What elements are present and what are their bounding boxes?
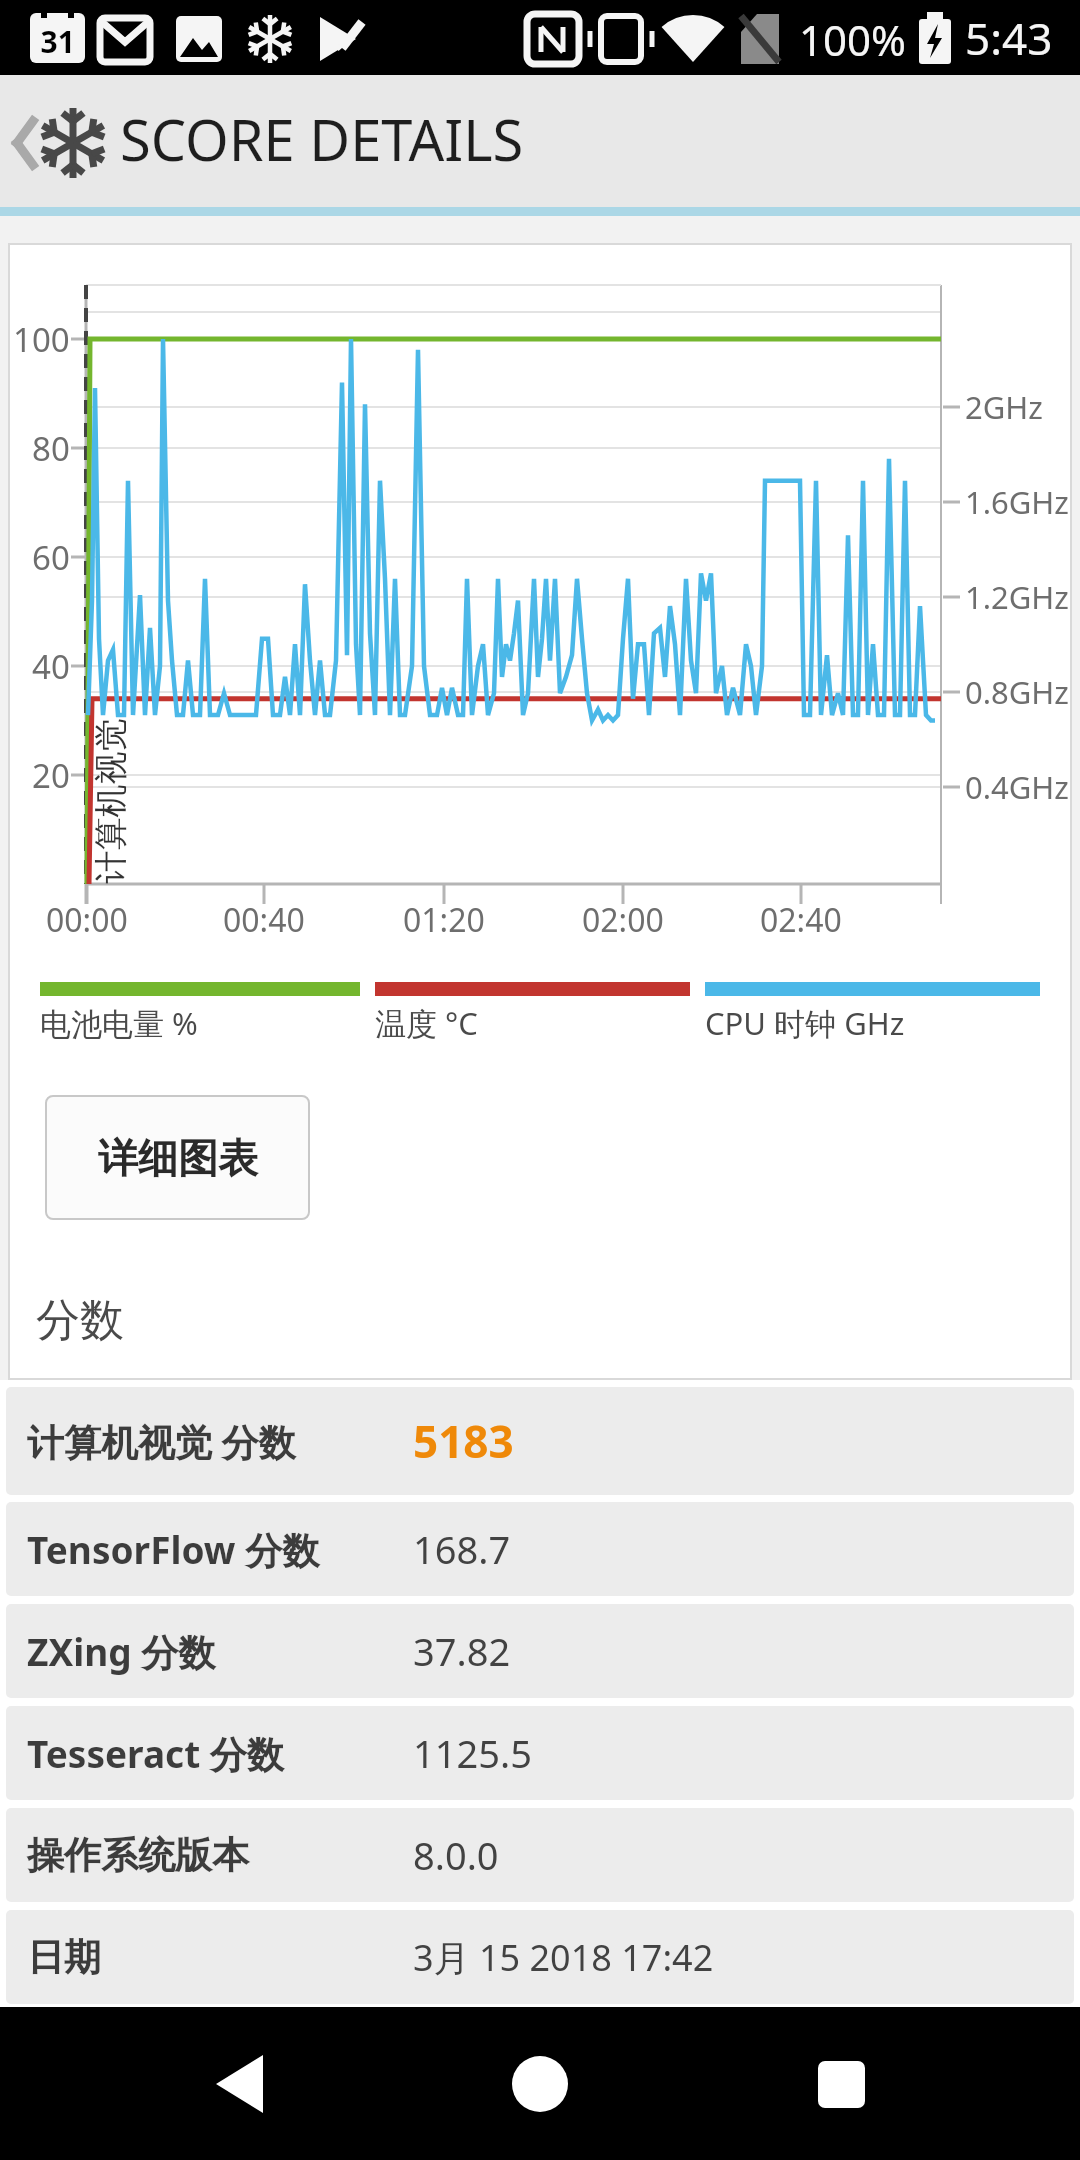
button[interactable]: TensorFlow 分数 bbox=[6, 1502, 1074, 1596]
staticText: 操作系统版本 bbox=[27, 1832, 249, 1879]
button[interactable] bbox=[480, 2028, 600, 2140]
staticText: 计算机视觉 分数 bbox=[27, 1416, 296, 1467]
button[interactable]: 计算机视觉 分数 bbox=[6, 1387, 1074, 1495]
staticText: TensorFlow 分数 bbox=[27, 1524, 320, 1575]
button[interactable]: 详细图表 bbox=[45, 1095, 310, 1220]
button[interactable]: ZXing 分数 bbox=[6, 1604, 1074, 1698]
staticText: 3月 15 2018 17:42 bbox=[413, 1933, 714, 1982]
button[interactable] bbox=[0, 75, 115, 207]
staticText: 8.0.0 bbox=[413, 1829, 499, 1881]
button[interactable]: 日期 bbox=[6, 1910, 1074, 2004]
staticText: 详细图表 bbox=[98, 1133, 258, 1183]
button[interactable]: 操作系统版本 bbox=[6, 1808, 1074, 1902]
staticText: SCORE DETAILS bbox=[120, 101, 524, 177]
staticText: Tesseract 分数 bbox=[27, 1728, 284, 1779]
staticText: 5183 bbox=[413, 1411, 514, 1471]
button[interactable] bbox=[180, 2028, 300, 2140]
staticText: 分数 bbox=[36, 1293, 124, 1348]
staticText: 1125.5 bbox=[413, 1727, 532, 1779]
button[interactable]: Tesseract 分数 bbox=[6, 1706, 1074, 1800]
staticText: 日期 bbox=[27, 1934, 101, 1981]
staticText: 168.7 bbox=[413, 1523, 511, 1575]
staticText: ZXing 分数 bbox=[27, 1626, 216, 1677]
staticText: 37.82 bbox=[413, 1625, 511, 1677]
button[interactable] bbox=[781, 2028, 901, 2140]
